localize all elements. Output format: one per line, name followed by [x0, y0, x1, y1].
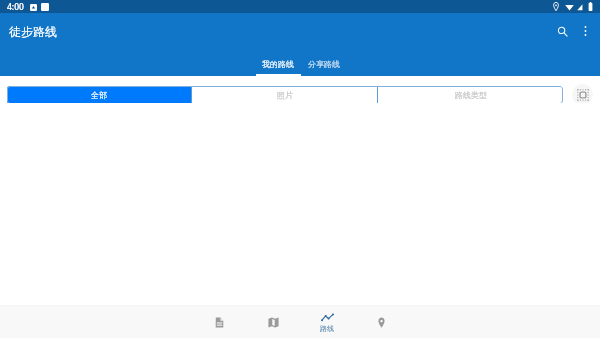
button[interactable]: 路线 [300, 306, 354, 338]
staticText: 4:00 [7, 1, 24, 13]
button[interactable]: Select area [572, 84, 593, 105]
staticText: 照片 [277, 90, 293, 100]
button[interactable]: Notes [192, 306, 246, 338]
staticText: 我的路线 [262, 59, 294, 69]
staticText: 路线类型 [455, 90, 487, 100]
button[interactable]: Map [246, 306, 300, 338]
staticText: 全部 [91, 90, 107, 100]
button[interactable]: More options [574, 20, 596, 42]
button[interactable]: Search [551, 20, 573, 42]
button[interactable]: 全部 [7, 86, 191, 104]
button[interactable]: 照片 [192, 86, 377, 104]
button[interactable]: 我的路线 [255, 53, 301, 76]
button[interactable]: 分享路线 [301, 53, 347, 76]
staticText: 徒步路线 [9, 24, 57, 39]
button[interactable]: Places [354, 306, 408, 338]
staticText: 路线 [320, 324, 334, 333]
button[interactable]: 路线类型 [378, 86, 563, 104]
staticText: 分享路线 [308, 59, 340, 69]
